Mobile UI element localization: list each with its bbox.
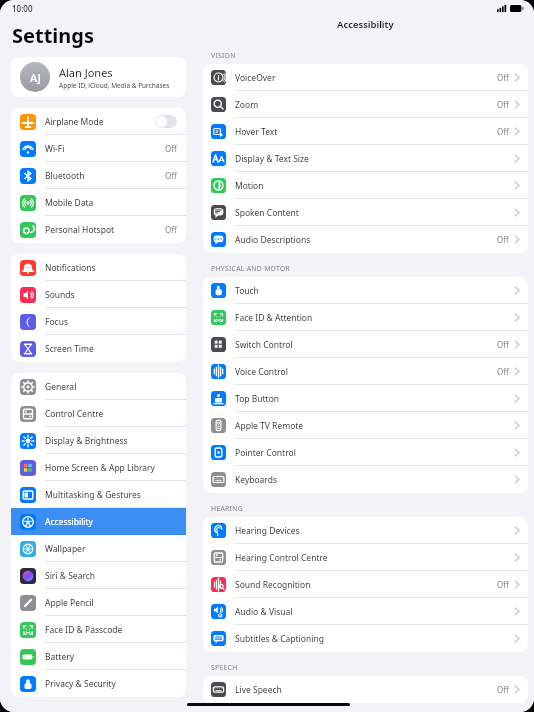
button[interactable]: Battery xyxy=(11,643,186,670)
button[interactable]: Motion xyxy=(203,172,528,199)
button[interactable]: Spoken Content xyxy=(203,199,528,226)
button[interactable]: Focus xyxy=(11,308,186,335)
staticText: Zoom xyxy=(235,99,497,111)
staticText: Face ID & Passcode xyxy=(45,624,177,636)
button[interactable]: Face ID & Attention xyxy=(203,304,528,331)
staticText: Top Button xyxy=(235,393,515,405)
staticText: Sound Recognition xyxy=(235,579,497,591)
button[interactable]: Hearing Devices xyxy=(203,517,528,544)
button[interactable]: AJ xyxy=(11,57,186,97)
button[interactable]: Switch Control xyxy=(203,331,528,358)
staticText: Alan Jones xyxy=(59,65,113,80)
button[interactable]: Sound Recognition xyxy=(203,571,528,598)
button[interactable]: Mobile Data xyxy=(11,189,186,216)
staticText: AJ xyxy=(30,70,41,85)
button[interactable]: Pointer Control xyxy=(203,439,528,466)
staticText: VISION xyxy=(211,51,236,60)
staticText: Display & Brightness xyxy=(45,435,177,447)
staticText: Accessibility xyxy=(337,18,394,31)
button[interactable] xyxy=(155,115,177,128)
staticText: PHYSICAL AND MOTOR xyxy=(211,264,291,273)
staticText: Wi-Fi xyxy=(45,143,165,155)
button[interactable]: Personal Hotspot xyxy=(11,216,186,243)
button[interactable]: Apple Pencil xyxy=(11,589,186,616)
staticText: Keyboards xyxy=(235,474,515,486)
button[interactable]: Bluetooth xyxy=(11,162,186,189)
button[interactable]: Touch xyxy=(203,277,528,304)
button[interactable]: Home Screen & App Library xyxy=(11,454,186,481)
button[interactable]: Siri & Search xyxy=(11,562,186,589)
staticText: Wallpaper xyxy=(45,543,177,555)
staticText: Siri & Search xyxy=(45,570,177,582)
button[interactable]: Zoom xyxy=(203,91,528,118)
staticText: Off xyxy=(497,99,509,110)
staticText: Personal Hotspot xyxy=(45,224,165,236)
button[interactable]: Display & Brightness xyxy=(11,427,186,454)
button[interactable]: Multitasking & Gestures xyxy=(11,481,186,508)
staticText: Sounds xyxy=(45,289,177,301)
staticText: Screen Time xyxy=(45,343,177,355)
staticText: Face ID & Attention xyxy=(235,312,515,324)
button[interactable]: Display & Text Size xyxy=(203,145,528,172)
staticText: SPEECH xyxy=(211,663,238,672)
staticText: Accessibility xyxy=(45,516,177,528)
staticText: Off xyxy=(497,339,509,350)
staticText: Spoken Content xyxy=(235,207,515,219)
staticText: Off xyxy=(497,126,509,137)
staticText: Off xyxy=(497,366,509,377)
button[interactable]: Accessibility xyxy=(11,508,186,535)
staticText: Battery xyxy=(45,651,177,663)
button[interactable]: Sounds xyxy=(11,281,186,308)
staticText: Audio Descriptions xyxy=(235,234,497,246)
button[interactable]: Top Button xyxy=(203,385,528,412)
staticText: Audio & Visual xyxy=(235,606,515,618)
staticText: Apple ID, iCloud, Media & Purchases xyxy=(59,81,170,90)
button[interactable]: VoiceOver xyxy=(203,64,528,91)
button[interactable]: Audio Descriptions xyxy=(203,226,528,253)
staticText: Notifications xyxy=(45,262,177,274)
button[interactable]: Audio & Visual xyxy=(203,598,528,625)
button[interactable]: General xyxy=(11,373,186,400)
staticText: VoiceOver xyxy=(235,72,497,84)
button[interactable]: Voice Control xyxy=(203,358,528,385)
staticText: Settings xyxy=(12,22,94,49)
staticText: Home Screen & App Library xyxy=(45,462,177,474)
button[interactable]: Subtitles & Captioning xyxy=(203,625,528,652)
button[interactable]: Hearing Control Centre xyxy=(203,544,528,571)
staticText: Voice Control xyxy=(235,366,497,378)
staticText: Hearing Control Centre xyxy=(235,552,515,564)
staticText: Switch Control xyxy=(235,339,497,351)
button[interactable]: Wi-Fi xyxy=(11,135,186,162)
staticText: Display & Text Size xyxy=(235,153,515,165)
button[interactable]: Live Speech xyxy=(203,676,528,703)
staticText: Off xyxy=(497,684,509,695)
staticText: Off xyxy=(165,170,177,181)
staticText: Privacy & Security xyxy=(45,678,177,690)
staticText: General xyxy=(45,381,177,393)
staticText: Off xyxy=(497,234,509,245)
staticText: Off xyxy=(165,143,177,154)
staticText: Touch xyxy=(235,285,515,297)
button[interactable]: Wallpaper xyxy=(11,535,186,562)
staticText: Bluetooth xyxy=(45,170,165,182)
staticText: Focus xyxy=(45,316,177,328)
staticText: Mobile Data xyxy=(45,197,177,209)
button[interactable]: Hover Text xyxy=(203,118,528,145)
button[interactable]: Apple TV Remote xyxy=(203,412,528,439)
staticText: Control Centre xyxy=(45,408,177,420)
button[interactable]: Airplane Mode xyxy=(11,108,186,135)
staticText: Apple TV Remote xyxy=(235,420,515,432)
button[interactable]: Control Centre xyxy=(11,400,186,427)
button[interactable]: Screen Time xyxy=(11,335,186,362)
button[interactable]: Face ID & Passcode xyxy=(11,616,186,643)
staticText: Multitasking & Gestures xyxy=(45,489,177,501)
button[interactable]: Keyboards xyxy=(203,466,528,493)
staticText: Off xyxy=(165,224,177,235)
button[interactable]: Notifications xyxy=(11,254,186,281)
staticText: Motion xyxy=(235,180,515,192)
staticText: 10:00 xyxy=(12,3,33,14)
staticText: Live Speech xyxy=(235,684,497,696)
button[interactable]: Privacy & Security xyxy=(11,670,186,697)
staticText: Off xyxy=(497,579,509,590)
staticText: Subtitles & Captioning xyxy=(235,633,515,645)
